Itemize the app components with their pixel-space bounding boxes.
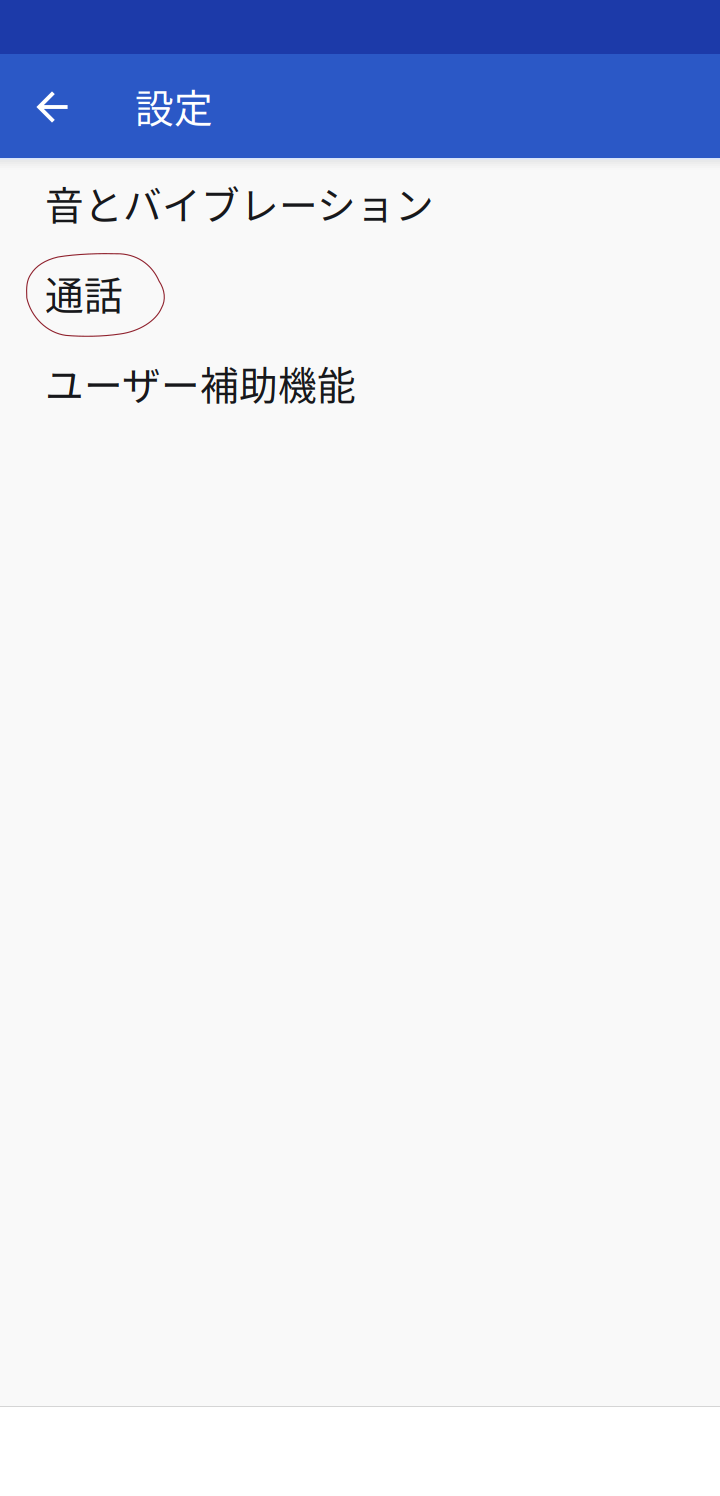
staticText: ユーザー補助機能 — [45, 355, 356, 411]
button[interactable]: ユーザー補助機能 — [0, 338, 720, 428]
staticText: 設定 — [135, 78, 213, 134]
staticText: 通話 — [45, 265, 123, 321]
button[interactable]: 音とバイブレーション — [0, 158, 720, 248]
staticText: 音とバイブレーション — [45, 175, 434, 231]
button[interactable]: Back — [16, 54, 88, 158]
button[interactable]: 設定 — [88, 54, 237, 158]
button[interactable]: 通話 — [0, 248, 720, 338]
